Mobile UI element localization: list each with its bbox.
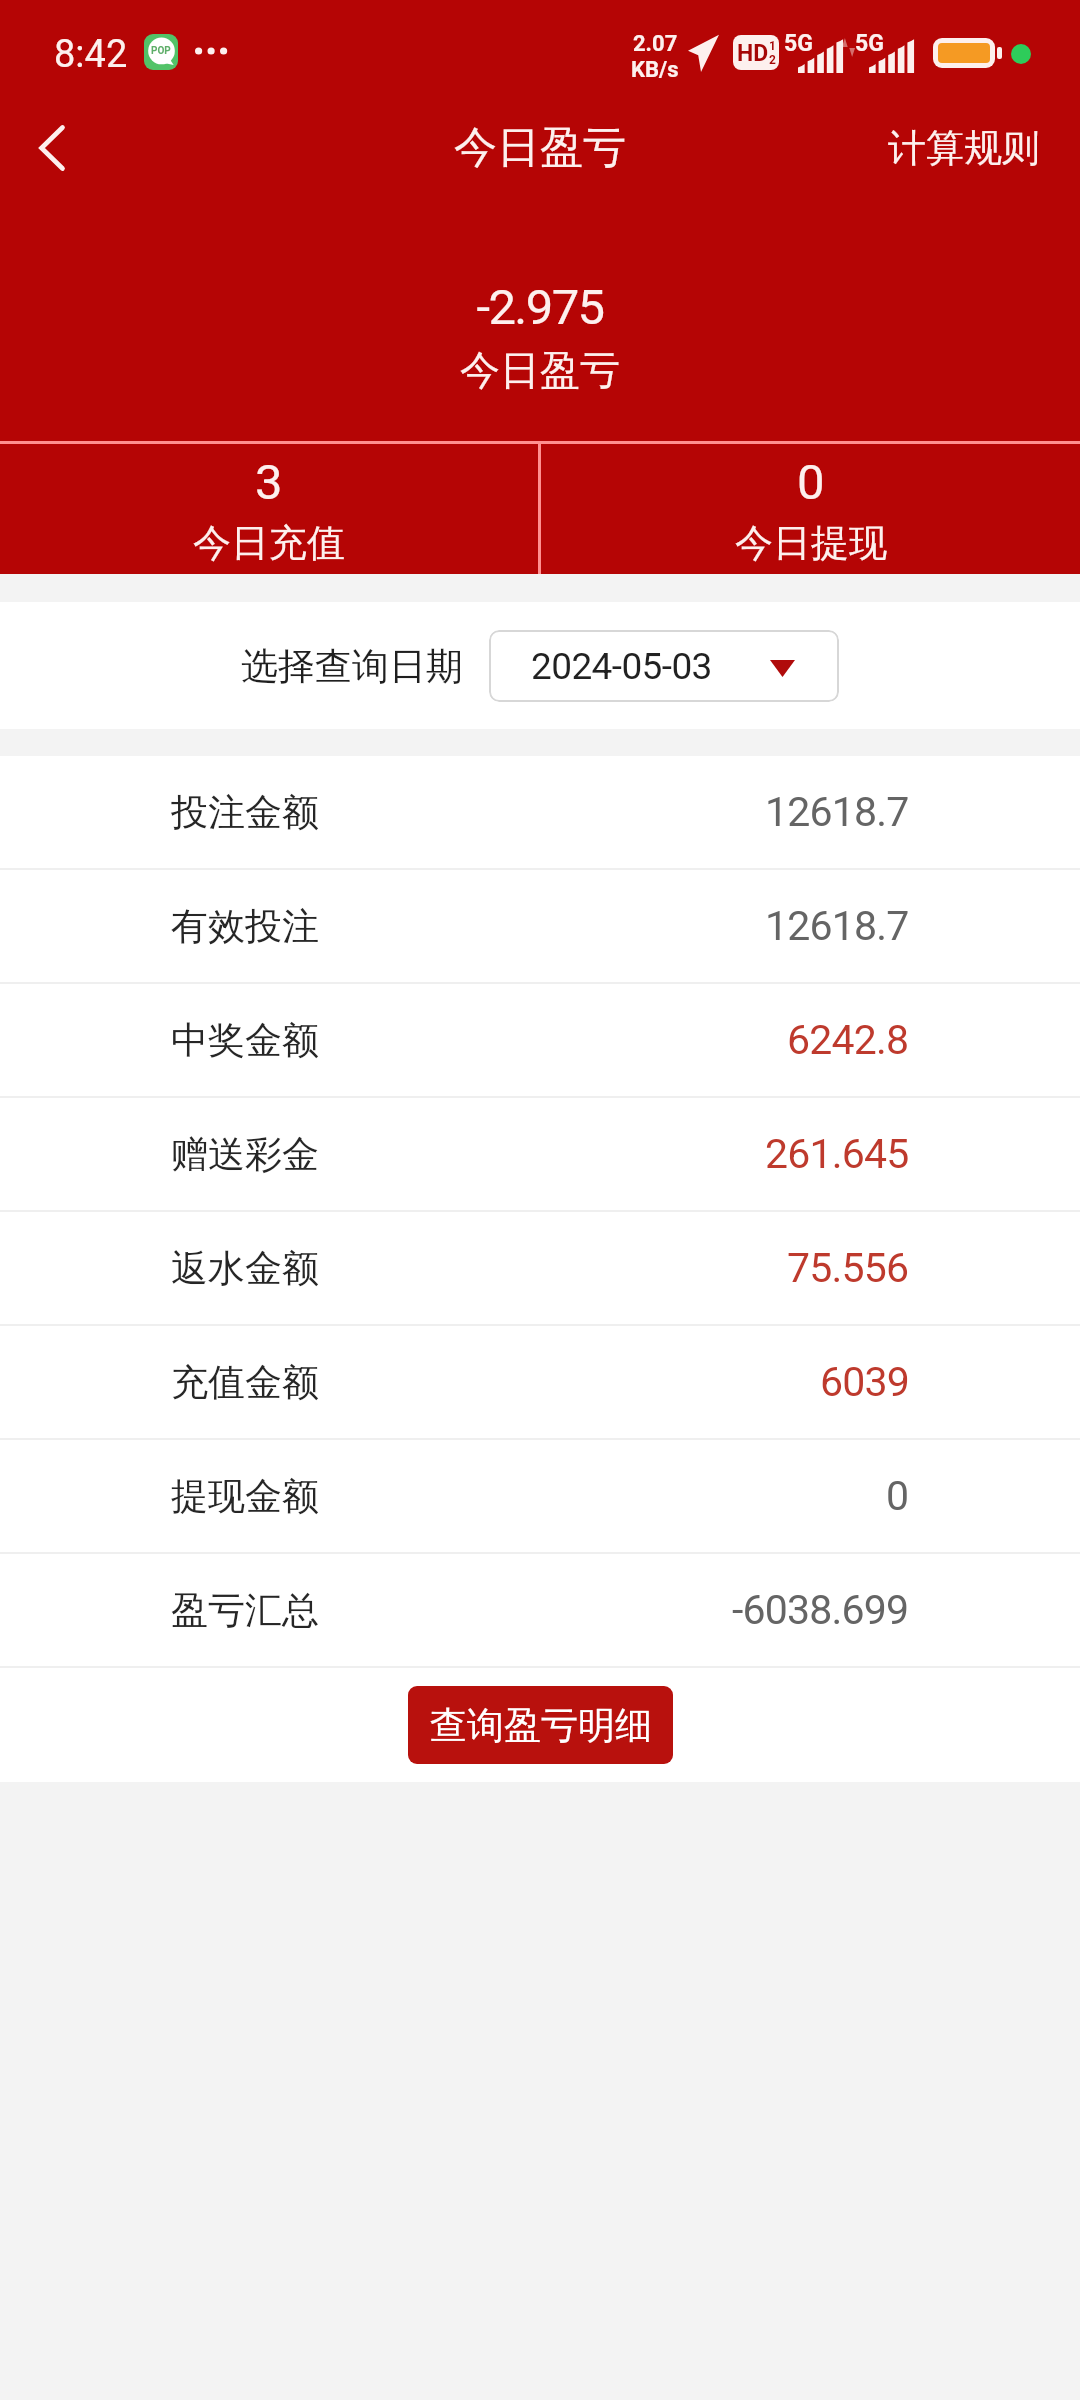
- button[interactable]: 有效投注: [0, 870, 1080, 982]
- button[interactable]: Back: [0, 94, 112, 201]
- button[interactable]: 返水金额: [0, 1212, 1080, 1324]
- button[interactable]: 计算规则: [848, 98, 1080, 198]
- button[interactable]: 中奖金额: [0, 984, 1080, 1096]
- button[interactable]: 盈亏汇总: [0, 1554, 1080, 1666]
- staticText: 6242.8: [787, 1016, 909, 1064]
- staticText: POP: [151, 45, 171, 57]
- staticText: 查询盈亏明细: [430, 1702, 652, 1749]
- button[interactable]: 2024-05-03: [489, 630, 839, 702]
- staticText: 0: [886, 1472, 909, 1520]
- button[interactable]: 投注金额: [0, 756, 1080, 868]
- staticText: 今日提现: [735, 519, 887, 567]
- staticText: 赠送彩金: [171, 1131, 319, 1178]
- staticText: -6038.699: [732, 1586, 909, 1634]
- staticText: 75.556: [787, 1244, 909, 1292]
- button[interactable]: 查询盈亏明细: [408, 1686, 673, 1764]
- staticText: 选择查询日期: [241, 643, 463, 690]
- staticText: 5G: [855, 30, 884, 57]
- button[interactable]: 赠送彩金: [0, 1098, 1080, 1210]
- staticText: 提现金额: [171, 1473, 319, 1520]
- staticText: 今日充值: [193, 519, 345, 567]
- staticText: 投注金额: [171, 789, 319, 836]
- staticText: 0: [797, 454, 825, 511]
- staticText: 261.645: [765, 1130, 909, 1178]
- staticText: 8:42: [54, 32, 128, 77]
- button[interactable]: 提现金额: [0, 1440, 1080, 1552]
- staticText: KB/s: [631, 57, 679, 83]
- staticText: 2.07: [633, 31, 678, 57]
- button[interactable]: 0: [541, 444, 1080, 574]
- staticText: 12618.7: [765, 902, 909, 950]
- staticText: HD: [737, 40, 769, 67]
- button[interactable]: 3: [0, 444, 538, 574]
- staticText: -2.975: [0, 279, 1080, 336]
- staticText: 充值金额: [171, 1359, 319, 1406]
- staticText: 有效投注: [171, 903, 319, 950]
- staticText: 6039: [820, 1358, 909, 1406]
- staticText: 2024-05-03: [531, 645, 712, 688]
- staticText: 计算规则: [888, 124, 1040, 172]
- staticText: 3: [255, 454, 283, 511]
- staticText: 2: [769, 53, 776, 67]
- staticText: 返水金额: [171, 1245, 319, 1292]
- staticText: 中奖金额: [171, 1017, 319, 1064]
- staticText: 12618.7: [765, 788, 909, 836]
- staticText: 1: [769, 39, 776, 53]
- button[interactable]: 充值金额: [0, 1326, 1080, 1438]
- staticText: 今日盈亏: [0, 345, 1080, 395]
- staticText: 今日盈亏: [454, 121, 626, 175]
- staticText: 5G: [784, 30, 813, 57]
- staticText: 盈亏汇总: [171, 1587, 319, 1634]
